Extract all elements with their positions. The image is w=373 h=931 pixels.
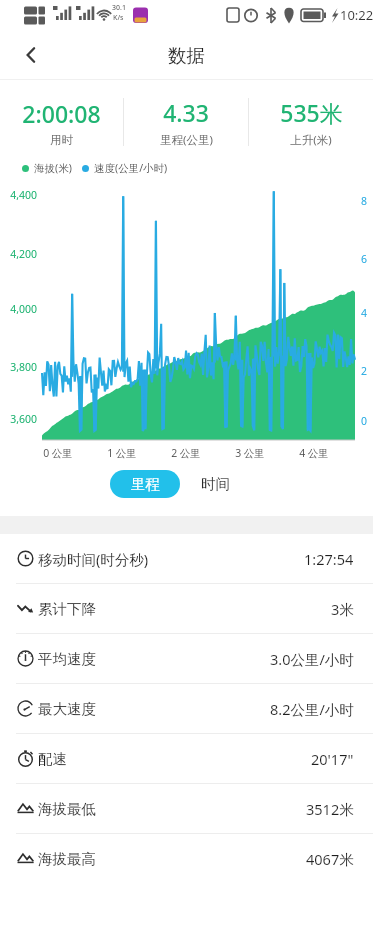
staticText: 最大速度 [38,700,96,718]
staticText: 海拔最高 [38,850,96,868]
staticText: 3米 [331,599,354,619]
staticText: 6 [361,252,368,266]
staticText: 里程 [131,475,160,493]
staticText: 0 [361,414,368,428]
staticText: 4,400 [4,188,37,202]
button[interactable]: 时间 [180,470,250,498]
staticText: 上升(米) [290,132,332,148]
staticText: 535米 [280,97,343,128]
staticText: 移动时间(时分秒) [38,549,149,569]
button[interactable]: 海拔最低 [0,784,373,833]
staticText: 速度(公里/小时) [94,161,168,175]
staticText: 0 公里 [34,446,82,460]
button[interactable]: 配速 [0,734,373,783]
staticText: 4 [361,306,368,320]
staticText: 用时 [50,133,73,147]
staticText: 10:22 [340,6,373,24]
staticText: 平均速度 [38,650,96,668]
staticText: 海拔(米) [34,161,72,175]
button[interactable]: 移动时间(时分秒) [0,534,373,583]
staticText: 4.33 [163,97,209,128]
staticText: 3512米 [306,799,354,819]
staticText: 3.0公里/小时 [270,649,354,669]
staticText: 2 [361,364,368,378]
button[interactable]: 里程 [110,470,180,498]
staticText: 1 公里 [98,446,146,460]
staticText: 2:00:08 [22,98,101,129]
staticText: 数据 [168,44,205,67]
staticText: 30.1 [112,3,126,13]
staticText: 4,200 [4,247,37,261]
staticText: 8.2公里/小时 [270,699,354,719]
staticText: 4067米 [306,849,354,869]
button[interactable]: 平均速度 [0,634,373,683]
staticText: 3,600 [4,412,37,426]
staticText: 8 [361,194,368,208]
button[interactable]: 累计下降 [0,584,373,633]
button[interactable]: 最大速度 [0,684,373,733]
button[interactable]: Back [10,34,52,76]
staticText: 累计下降 [38,600,96,618]
staticText: 4 公里 [290,446,338,460]
staticText: 配速 [38,750,67,768]
staticText: 海拔最低 [38,800,96,818]
staticText: 2 公里 [162,446,210,460]
staticText: 3,800 [4,360,37,374]
staticText: 3 公里 [226,446,274,460]
staticText: 4,000 [4,302,37,316]
staticText: 里程(公里) [160,132,213,148]
staticText: K/s [113,13,124,23]
button[interactable]: 海拔最高 [0,834,373,883]
staticText: 1:27:54 [304,549,354,569]
staticText: 时间 [201,475,230,493]
staticText: 20'17" [311,749,354,769]
